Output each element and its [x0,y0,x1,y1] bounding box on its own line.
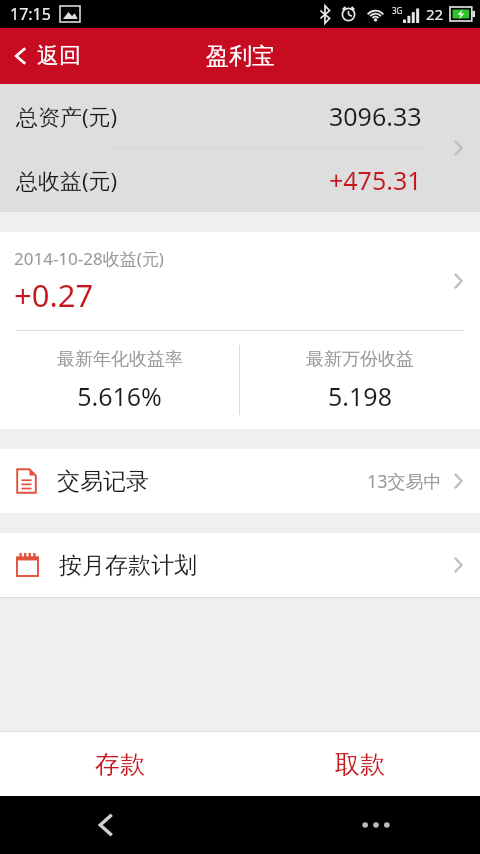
staticText: 最新年化收益率 [57,348,183,371]
staticText: 总收益(元) [16,165,118,195]
button[interactable]: More options [350,799,402,851]
staticText: 17:15 [10,3,51,25]
staticText: 交易记录 [57,467,149,496]
button[interactable]: Back [80,799,132,851]
button[interactable]: 按月存款计划 [0,533,480,597]
staticText: 盈利宝 [206,42,275,71]
staticText: 存款 [95,749,145,780]
staticText: 按月存款计划 [59,551,197,580]
button[interactable]: 交易记录 [0,449,480,513]
staticText: 最新万份收益 [306,348,414,371]
button[interactable]: 取款 [240,732,480,796]
staticText: 取款 [335,749,385,780]
staticText: 13交易中 [367,469,442,494]
button[interactable]: 存款 [0,732,240,796]
button[interactable]: 总资产(元) [0,84,480,212]
staticText: 22 [426,4,444,24]
staticText: 总资产(元) [16,101,118,131]
staticText: 返回 [37,42,81,70]
staticText: +475.31 [329,163,422,197]
button[interactable]: 2014-10-28收益(元) [0,232,480,330]
staticText: 3096.33 [329,99,422,133]
staticText: 5.616% [77,379,162,413]
staticText: 5.198 [328,379,392,413]
staticText: +0.27 [14,274,94,316]
staticText: 2014-10-28收益(元) [14,247,164,270]
staticText: 3G [392,5,403,16]
button[interactable]: 返回 [0,28,99,84]
